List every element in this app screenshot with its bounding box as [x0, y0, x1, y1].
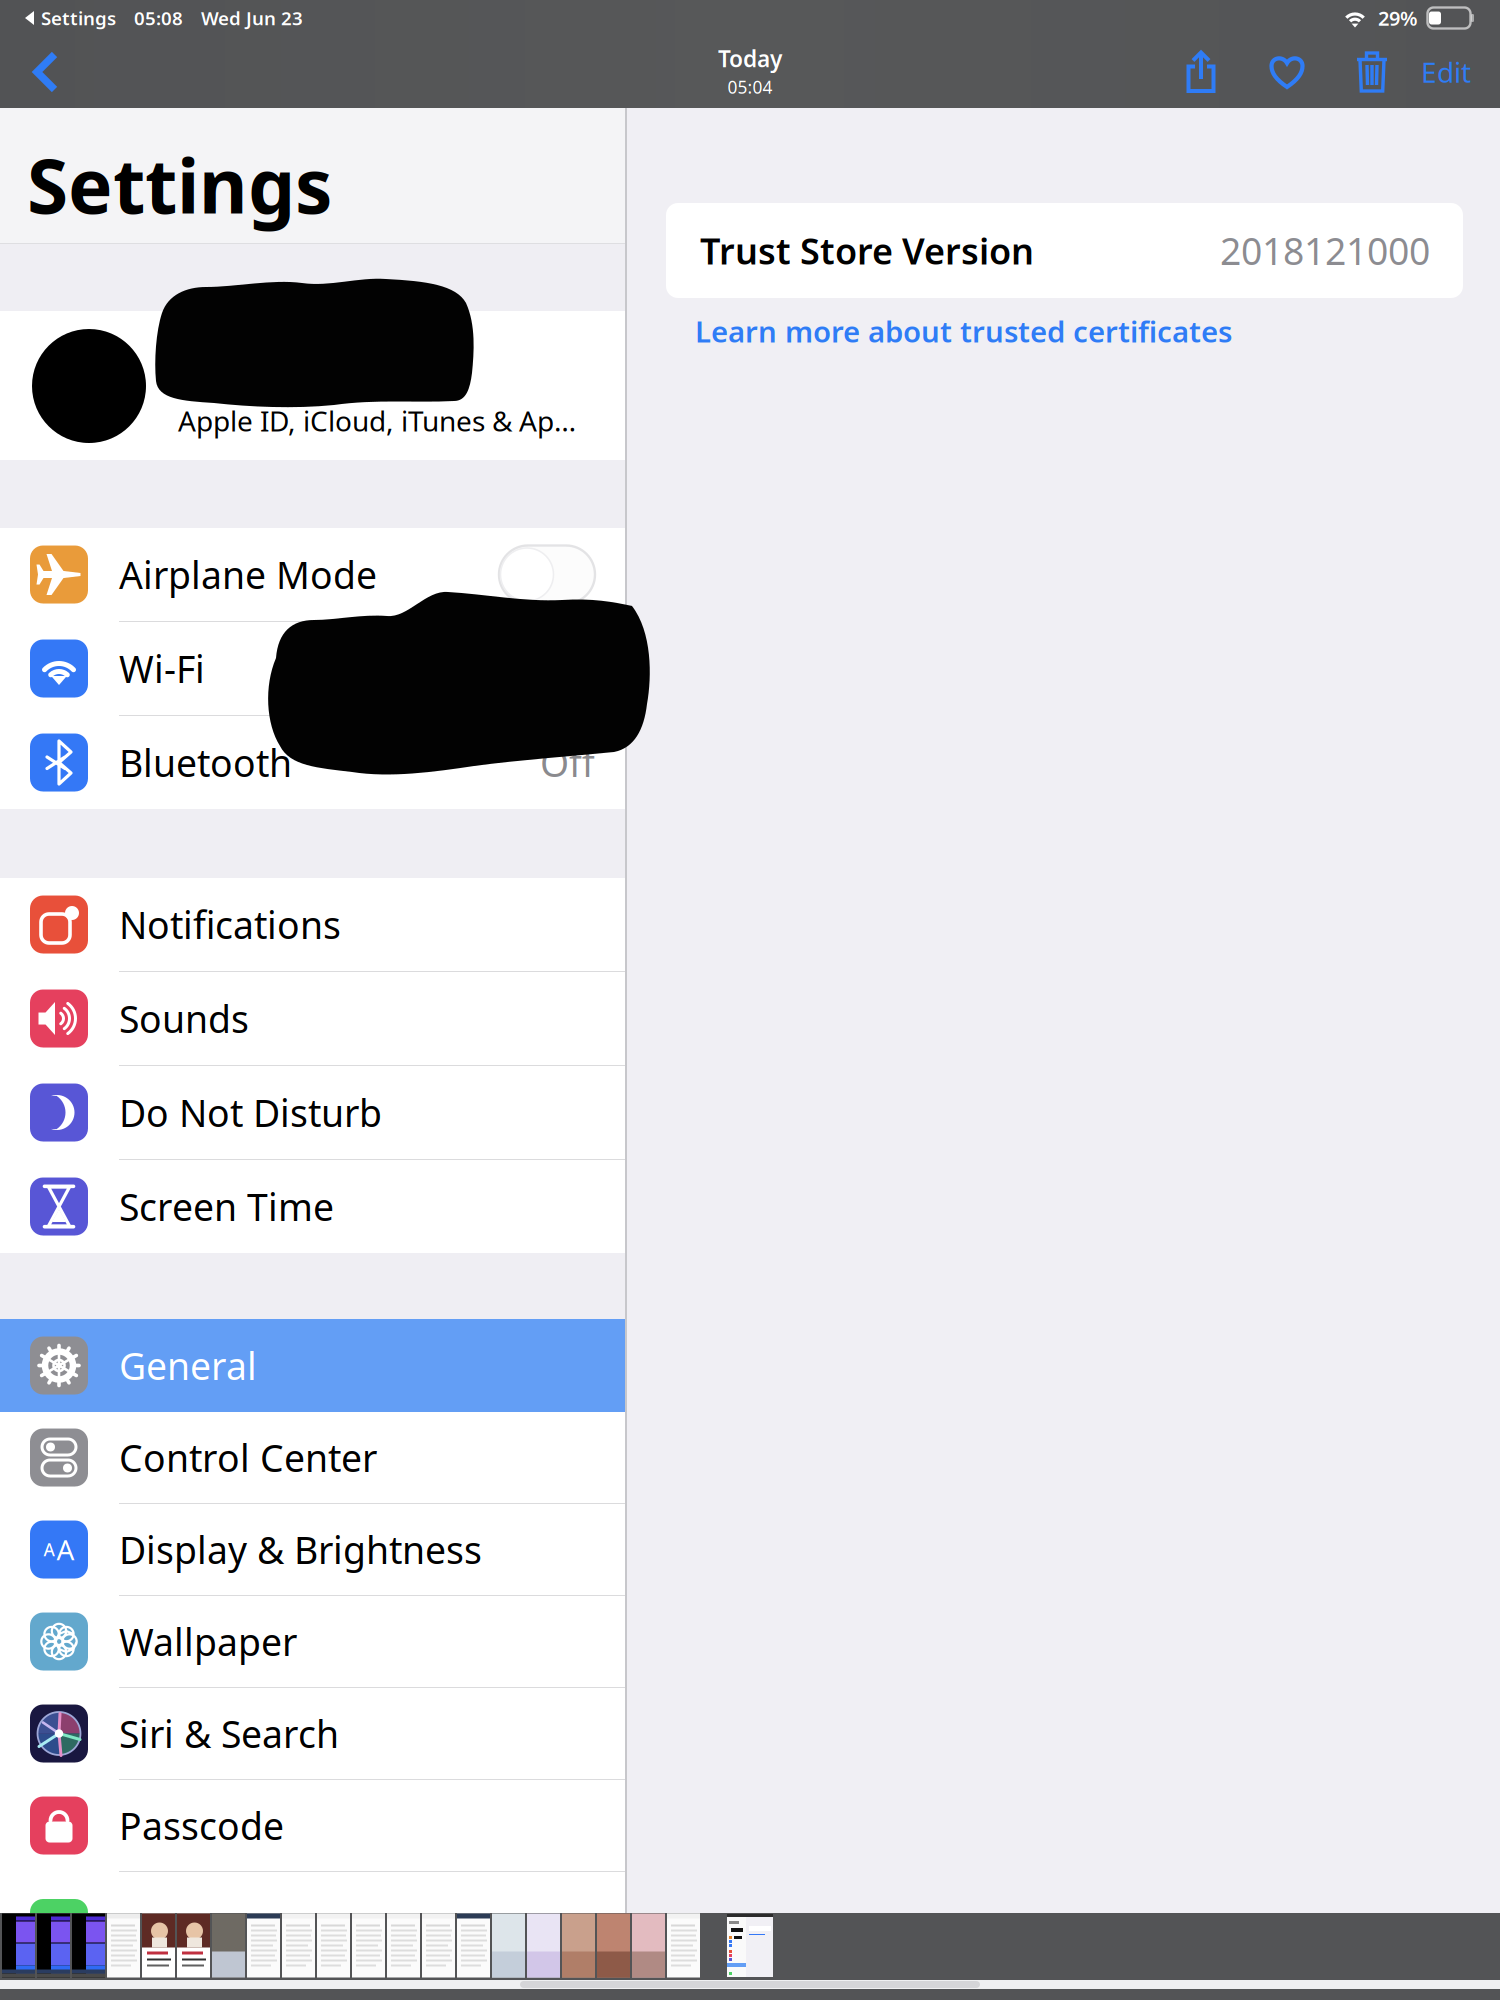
staticText: 05:08: [134, 6, 183, 30]
button[interactable]: Airplane Mode: [0, 528, 625, 621]
button[interactable]: Passcode: [0, 1780, 625, 1871]
staticText: A: [43, 1538, 54, 1561]
staticText: A: [56, 1531, 74, 1568]
button[interactable]: Apple ID, iCloud, iTunes & Ap…: [0, 311, 625, 460]
button[interactable]: Back: [18, 36, 74, 108]
button[interactable]: Learn more about trusted certificates: [695, 304, 1295, 358]
staticText: Today: [718, 43, 782, 73]
staticText: Sounds: [119, 994, 249, 1043]
staticText: Wed Jun 23: [201, 6, 303, 30]
button[interactable]: Edit: [1406, 36, 1486, 108]
staticText: 2018121000: [1220, 226, 1430, 275]
staticText: Settings: [27, 135, 332, 234]
button[interactable]: Wallpaper: [0, 1596, 625, 1687]
staticText: Learn more about trusted certificates: [695, 311, 1232, 350]
staticText: 05:04: [727, 75, 772, 98]
staticText: Apple ID, iCloud, iTunes & Ap…: [178, 402, 576, 439]
button[interactable]: Screen Time: [0, 1160, 625, 1253]
staticText: Do Not Disturb: [119, 1088, 382, 1137]
staticText: Wallpaper: [119, 1617, 297, 1666]
button[interactable]: Sounds: [0, 972, 625, 1065]
staticText: General: [119, 1341, 257, 1390]
button[interactable]: Siri & Search: [0, 1688, 625, 1779]
button[interactable]: Control Center: [0, 1412, 625, 1503]
staticText: Passcode: [119, 1801, 284, 1850]
button[interactable]: Wi-Fi: [0, 622, 625, 715]
staticText: Screen Time: [119, 1182, 334, 1231]
staticText: Trust Store Version: [700, 227, 1034, 274]
button[interactable]: Bluetooth: [0, 716, 625, 809]
staticText: Bluetooth: [119, 738, 292, 787]
button[interactable]: Do Not Disturb: [0, 1066, 625, 1159]
button[interactable]: General: [0, 1319, 625, 1412]
staticText: Control Center: [119, 1433, 377, 1482]
staticText: Siri & Search: [119, 1709, 339, 1758]
staticText: Notifications: [119, 900, 341, 949]
staticText: 29%: [1378, 5, 1418, 31]
staticText: Wi-Fi: [119, 644, 205, 693]
button[interactable]: Share: [1169, 36, 1233, 108]
button[interactable]: Trust Store Version: [666, 203, 1463, 298]
button[interactable]: Favorite: [1255, 36, 1319, 108]
staticText: Edit: [1421, 53, 1471, 91]
staticText: Off: [540, 738, 595, 787]
button[interactable]: A: [0, 1504, 625, 1595]
staticText: Display & Brightness: [119, 1525, 482, 1574]
staticText: Settings: [41, 6, 116, 30]
button[interactable]: Delete: [1340, 36, 1404, 108]
button[interactable]: Notifications: [0, 878, 625, 971]
staticText: Airplane Mode: [119, 550, 377, 599]
